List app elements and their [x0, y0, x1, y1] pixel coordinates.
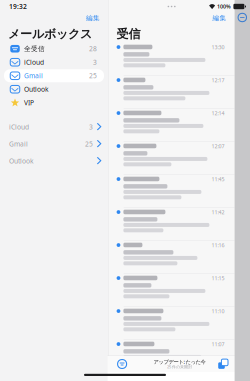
staticText: 3	[93, 58, 97, 67]
staticText: 11:07	[211, 341, 224, 348]
staticText: 12:07	[211, 143, 224, 150]
staticText: 11:15	[211, 275, 224, 282]
button[interactable]: Outlook	[0, 82, 108, 96]
button[interactable]: 編集	[210, 12, 230, 24]
button[interactable]: Gmail	[0, 135, 108, 152]
staticText: 編集	[213, 14, 227, 22]
staticText: 編集	[86, 14, 100, 22]
staticText: 100%	[217, 3, 231, 10]
staticText: 19:32	[9, 2, 27, 11]
staticText: 全受信	[24, 45, 45, 53]
staticText: 25	[89, 71, 97, 80]
staticText: 11:42	[211, 209, 224, 216]
button[interactable]: 11:16	[109, 240, 235, 273]
button[interactable]: iCloud	[0, 55, 108, 69]
button[interactable]: 編集	[83, 12, 103, 24]
button[interactable]: 12:07	[109, 141, 235, 174]
button[interactable]: 12:14	[109, 108, 235, 141]
button[interactable]: 11:07	[109, 339, 235, 372]
staticText: iCloud	[9, 123, 29, 131]
button[interactable]: Gmail	[0, 69, 108, 82]
button[interactable]: 11:42	[109, 207, 235, 240]
staticText: 12:14	[211, 110, 224, 117]
staticText: 11:16	[211, 242, 224, 249]
button[interactable]: Compose	[216, 356, 231, 371]
staticText: 12:17	[211, 77, 224, 84]
staticText: 11:10	[211, 308, 224, 315]
staticText: 28	[89, 44, 97, 53]
button[interactable]: 12:17	[109, 75, 235, 108]
button[interactable]: 13:30	[109, 42, 235, 75]
staticText: 13:30	[211, 44, 224, 51]
staticText: Gmail	[24, 71, 43, 80]
button[interactable]: VIP	[0, 96, 108, 109]
staticText: 25	[85, 140, 93, 148]
staticText: 3	[89, 123, 93, 131]
staticText: Outlook	[24, 85, 49, 94]
staticText: 25 件の未開封	[167, 364, 192, 369]
button[interactable]: 11:45	[109, 174, 235, 207]
staticText: 受信	[117, 27, 141, 41]
staticText: VIP	[24, 98, 34, 107]
staticText: アップデート: たった今	[154, 358, 206, 365]
button[interactable]: iCloud	[0, 118, 108, 135]
staticText: Gmail	[9, 140, 28, 148]
staticText: 11:45	[211, 176, 224, 183]
staticText: メールボックス	[8, 27, 92, 41]
button[interactable]: Filter	[115, 356, 130, 371]
button[interactable]: 全受信	[0, 42, 108, 55]
staticText: Outlook	[9, 157, 34, 165]
button[interactable]: More	[237, 12, 248, 23]
button[interactable]: Outlook	[0, 152, 108, 169]
button[interactable]: 11:10	[109, 306, 235, 339]
button[interactable]: 11:15	[109, 273, 235, 306]
staticText: iCloud	[24, 58, 44, 67]
